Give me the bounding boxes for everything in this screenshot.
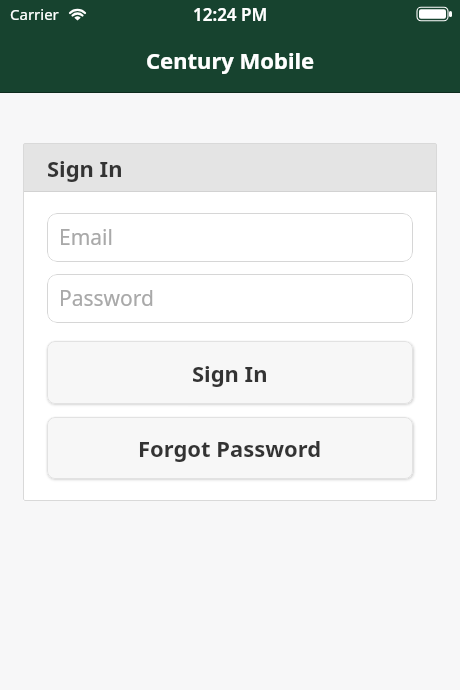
staticText: Sign In xyxy=(192,358,268,388)
staticText: Password xyxy=(59,284,154,313)
staticText: 12:24 PM xyxy=(193,3,268,26)
staticText: Forgot Password xyxy=(138,433,322,463)
staticText: Email xyxy=(59,223,113,252)
staticText: Carrier xyxy=(10,4,59,24)
button[interactable]: Email xyxy=(47,213,413,262)
staticText: Century Mobile xyxy=(146,45,315,75)
button[interactable]: Forgot Password xyxy=(47,417,413,479)
button[interactable]: Password xyxy=(47,274,413,323)
button[interactable]: Sign In xyxy=(47,341,413,404)
staticText: Sign In xyxy=(47,153,123,183)
